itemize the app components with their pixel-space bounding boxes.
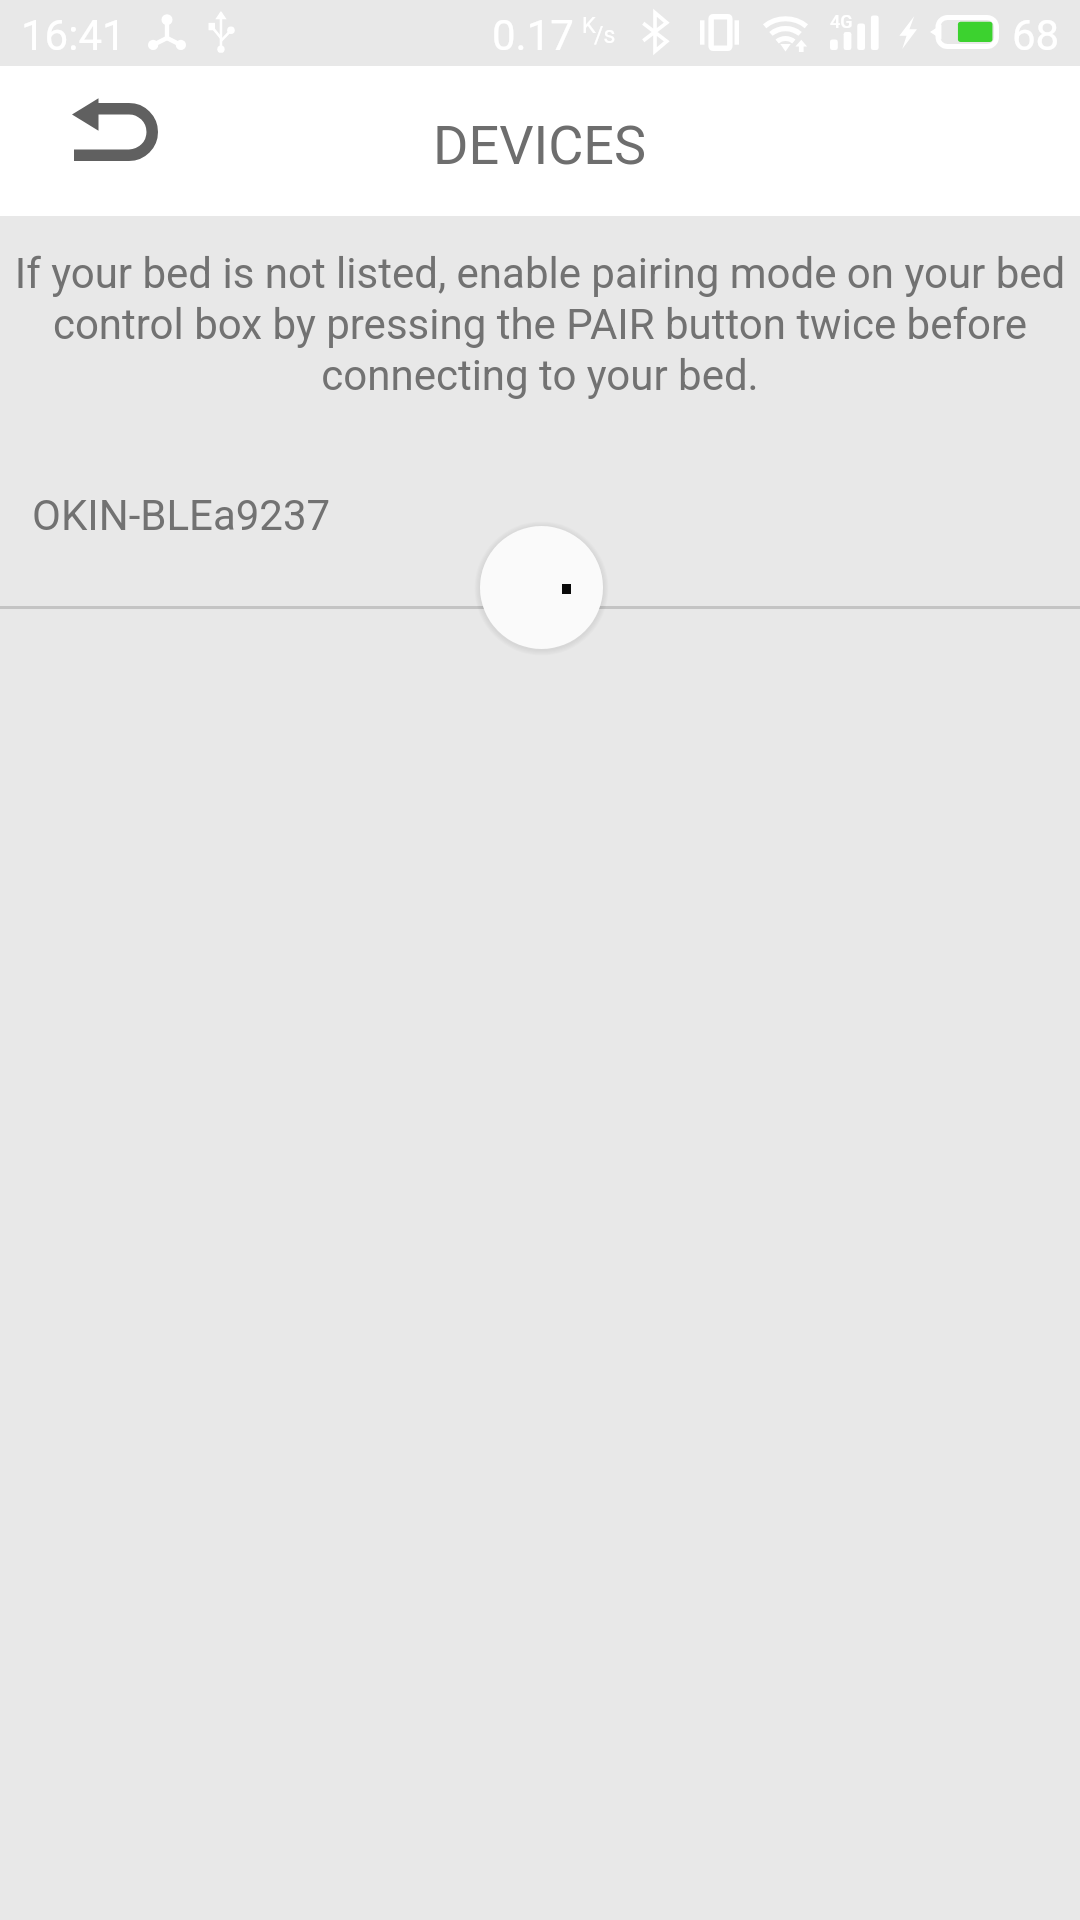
staticText: 4G — [830, 11, 853, 32]
staticText: If your bed is not listed, enable pairin… — [6, 249, 1074, 401]
staticText: /s — [594, 22, 616, 49]
button[interactable]: OKIN-BLEa9237 — [0, 463, 1080, 606]
staticText: 68 — [1012, 11, 1060, 60]
button[interactable]: Back — [22, 76, 182, 206]
staticText: 0.17 — [492, 11, 574, 60]
staticText: K — [582, 13, 596, 39]
staticText: OKIN-BLEa9237 — [32, 491, 331, 540]
staticText: 16:41 — [21, 11, 126, 60]
staticText: DEVICES — [433, 114, 647, 177]
